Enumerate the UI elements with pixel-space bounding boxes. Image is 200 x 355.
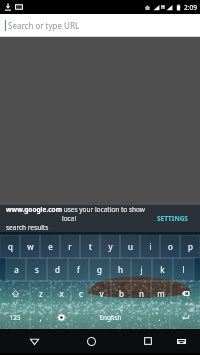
staticText: Search or type URL: [8, 20, 80, 31]
button[interactable]: w: [20, 235, 40, 258]
staticText: i: [149, 241, 152, 252]
staticText: g: [97, 264, 102, 275]
staticText: l: [182, 264, 185, 275]
button[interactable]: Search or type URL: [0, 14, 200, 37]
button[interactable]: k: [152, 258, 173, 281]
button[interactable]: a: [6, 258, 26, 281]
button[interactable]: p: [180, 235, 200, 258]
button[interactable]: Backspace: [171, 281, 200, 305]
staticText: c: [79, 288, 83, 299]
button[interactable]: x: [51, 281, 71, 305]
staticText: www.google.com: [6, 205, 62, 214]
staticText: t: [89, 241, 92, 252]
button[interactable]: u: [120, 235, 140, 258]
button[interactable]: Enter: [170, 305, 200, 329]
staticText: 2:09: [184, 3, 197, 12]
button[interactable]: Switch keyboard: [171, 331, 191, 351]
button[interactable]: f: [68, 258, 89, 281]
staticText: k: [160, 264, 165, 275]
button[interactable]: ,: [30, 305, 51, 329]
staticText: p: [188, 241, 193, 252]
button[interactable]: r: [60, 235, 80, 258]
button[interactable]: h: [110, 258, 131, 281]
staticText: m: [157, 288, 165, 299]
staticText: 123: [9, 313, 21, 322]
button[interactable]: n: [131, 281, 151, 305]
staticText: n: [139, 288, 144, 299]
staticText: d: [55, 264, 60, 275]
staticText: o: [168, 241, 173, 252]
staticText: .: [158, 312, 161, 323]
staticText: SETTINGS: [157, 214, 188, 223]
staticText: h: [118, 264, 123, 275]
staticText: r: [68, 241, 72, 252]
staticText: search results: [6, 223, 49, 232]
staticText: b: [119, 288, 124, 299]
button[interactable]: e: [40, 235, 60, 258]
button[interactable]: v: [91, 281, 111, 305]
button[interactable]: o: [160, 235, 180, 258]
button[interactable]: i: [140, 235, 160, 258]
staticText: z: [39, 288, 43, 299]
button[interactable]: SETTINGS: [151, 210, 194, 227]
staticText: w: [27, 241, 34, 252]
button[interactable]: l: [173, 258, 194, 281]
button[interactable]: j: [131, 258, 152, 281]
button[interactable]: English: [72, 305, 149, 329]
staticText: q: [8, 241, 13, 252]
staticText: English: [99, 313, 122, 322]
button[interactable]: z: [30, 281, 51, 305]
staticText: a: [14, 264, 19, 275]
staticText: ,: [39, 312, 42, 323]
button[interactable]: m: [151, 281, 171, 305]
button[interactable]: 123: [0, 305, 30, 329]
button[interactable]: .: [149, 305, 170, 329]
staticText: v: [99, 288, 104, 299]
staticText: x: [59, 288, 64, 299]
button[interactable]: t: [80, 235, 100, 258]
staticText: j: [140, 264, 143, 275]
staticText: f: [77, 264, 80, 275]
button[interactable]: Recent apps: [138, 331, 158, 351]
button[interactable]: y: [100, 235, 120, 258]
button[interactable]: g: [89, 258, 110, 281]
staticText: H: [161, 4, 165, 11]
button[interactable]: b: [111, 281, 131, 305]
button[interactable]: Shift: [0, 281, 30, 305]
button[interactable]: q: [0, 235, 20, 258]
staticText: e: [48, 241, 53, 252]
button[interactable]: Home: [81, 331, 101, 351]
button[interactable]: s: [26, 258, 47, 281]
button[interactable]: Close keyboard: [24, 331, 44, 351]
staticText: y: [108, 241, 113, 252]
staticText: u: [128, 241, 133, 252]
staticText: s: [35, 264, 39, 275]
staticText: uses your location to show local: [62, 205, 151, 223]
button[interactable]: d: [47, 258, 68, 281]
button[interactable]: Keyboard settings: [51, 305, 72, 329]
button[interactable]: c: [71, 281, 91, 305]
